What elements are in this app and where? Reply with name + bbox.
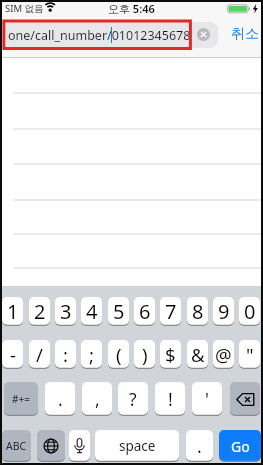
staticText: ? <box>129 387 137 411</box>
button[interactable] <box>37 430 65 462</box>
staticText: Go <box>231 437 250 456</box>
button[interactable]: 6 <box>134 297 155 326</box>
staticText: : <box>63 342 68 367</box>
staticText: 0 <box>244 298 256 325</box>
staticText: 1 <box>7 298 19 325</box>
staticText: ! <box>168 387 173 411</box>
staticText: 오후 5:46 <box>108 1 155 16</box>
staticText: 취소 <box>231 25 259 43</box>
staticText: space <box>119 437 156 455</box>
staticText: SIM 없음 <box>5 2 44 15</box>
staticText: ABC <box>6 439 27 453</box>
staticText: 2 <box>34 298 46 325</box>
button[interactable]: 취소 <box>228 23 261 45</box>
staticText: & <box>191 342 205 367</box>
staticText: 4 <box>86 298 98 325</box>
button[interactable]: ? <box>118 382 148 416</box>
button[interactable]: 8 <box>187 297 208 326</box>
staticText: 6 <box>139 298 151 325</box>
staticText: ' <box>205 387 209 411</box>
staticText: 3 <box>60 298 72 325</box>
button[interactable]: / <box>29 340 50 369</box>
staticText: / <box>36 342 43 367</box>
staticText: - <box>10 342 16 367</box>
staticText: " <box>246 342 254 367</box>
button[interactable]: - <box>2 340 23 369</box>
staticText: 8 <box>192 298 204 325</box>
button[interactable]: 0 <box>239 297 260 326</box>
button[interactable]: 2 <box>29 297 50 326</box>
staticText: one/call_number/01012345678 <box>8 27 191 44</box>
staticText: ; <box>89 342 94 367</box>
button[interactable]: , <box>82 382 112 416</box>
staticText: , <box>95 387 100 411</box>
button[interactable]: 9 <box>213 297 234 326</box>
button[interactable]: ! <box>155 382 185 416</box>
staticText: 5 <box>113 298 125 325</box>
button[interactable]: ' <box>192 382 222 416</box>
staticText: 9 <box>218 298 230 325</box>
button[interactable]: 1 <box>2 297 23 326</box>
button[interactable] <box>230 382 260 416</box>
staticText: . <box>197 434 202 458</box>
button[interactable]: space <box>95 430 179 462</box>
staticText: 7 <box>165 298 177 325</box>
button[interactable]: one/call_number/01012345678 <box>6 22 218 48</box>
staticText: #+= <box>12 392 30 406</box>
button[interactable] <box>197 28 210 41</box>
button[interactable]: ) <box>134 340 155 369</box>
button[interactable]: @ <box>213 340 234 369</box>
button[interactable]: 3 <box>55 297 76 326</box>
button[interactable]: Go <box>219 430 261 462</box>
button[interactable] <box>69 430 90 462</box>
staticText: @ <box>215 342 232 367</box>
button[interactable]: & <box>187 340 208 369</box>
staticText: ( <box>116 342 122 367</box>
button[interactable]: . <box>186 430 213 462</box>
button[interactable]: . <box>45 382 75 416</box>
button[interactable]: ; <box>81 340 102 369</box>
button[interactable]: $ <box>160 340 181 369</box>
staticText: $ <box>165 342 176 367</box>
button[interactable]: #+= <box>4 382 38 416</box>
button[interactable]: 5 <box>108 297 129 326</box>
staticText: ) <box>142 342 148 367</box>
button[interactable]: ( <box>108 340 129 369</box>
button[interactable]: 4 <box>81 297 102 326</box>
staticText: . <box>58 387 63 411</box>
button[interactable]: " <box>239 340 260 369</box>
button[interactable]: 7 <box>160 297 181 326</box>
button[interactable]: ABC <box>2 430 31 462</box>
button[interactable]: : <box>55 340 76 369</box>
